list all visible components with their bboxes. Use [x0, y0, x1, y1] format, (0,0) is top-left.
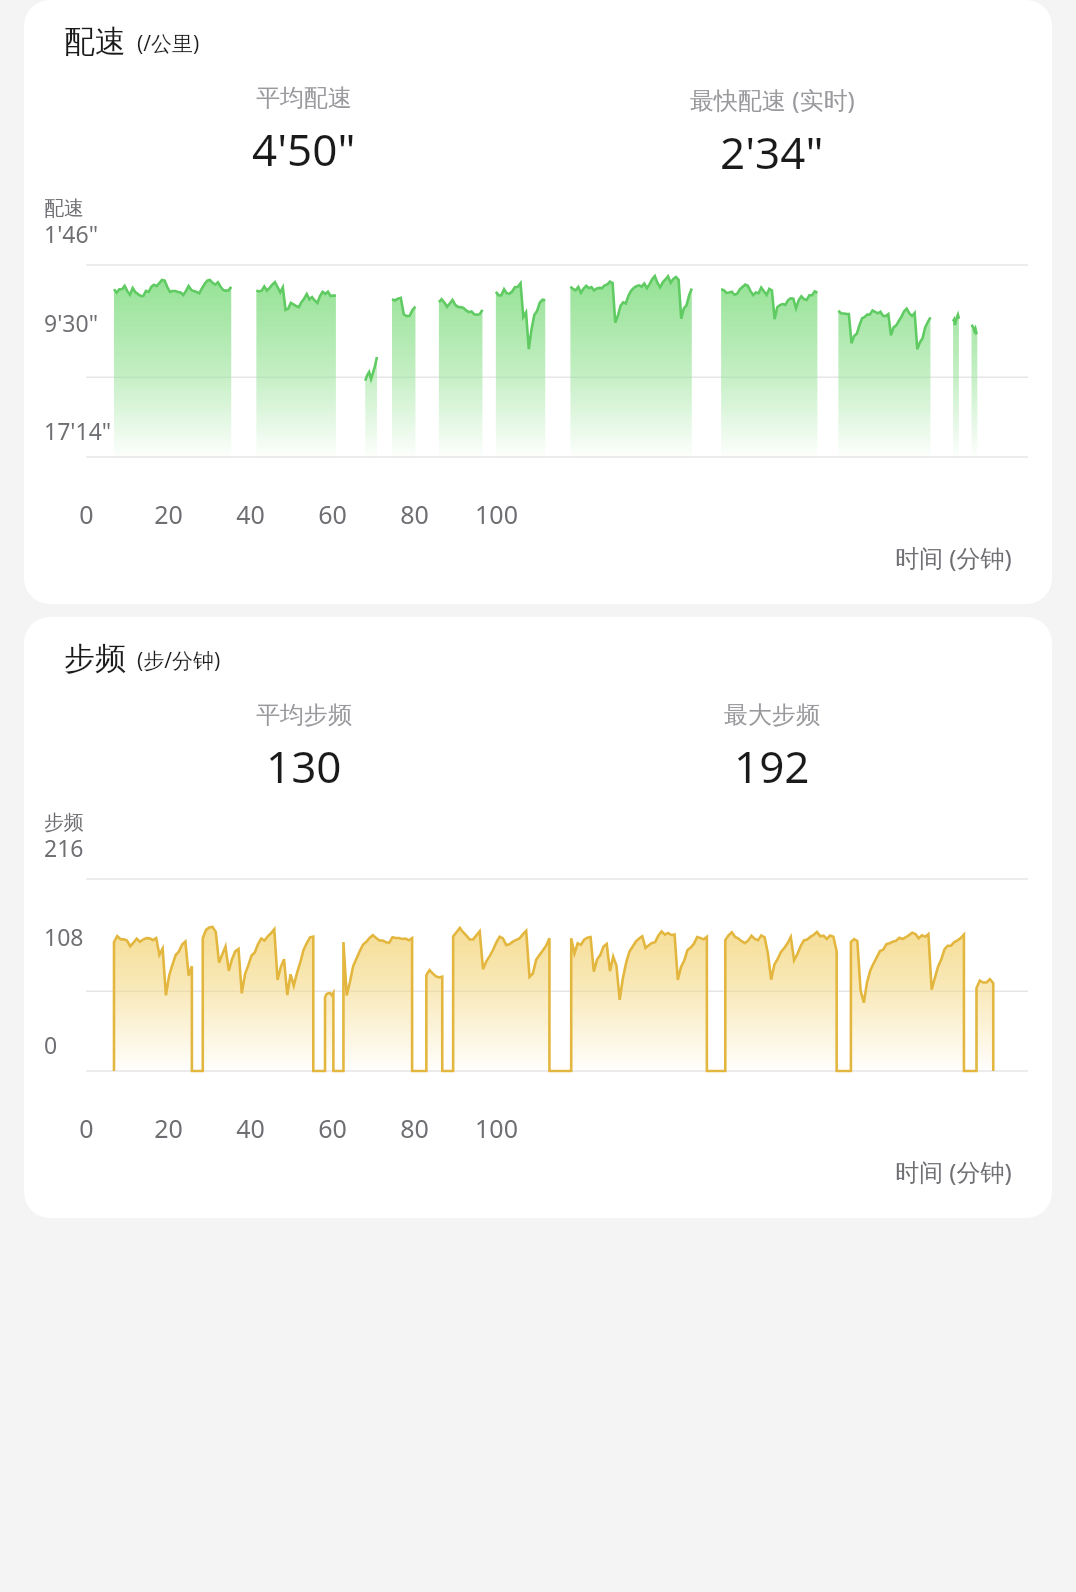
button[interactable]: 平均配速	[70, 83, 538, 179]
staticText: 平均配速	[256, 83, 352, 113]
staticText: 平均步频	[256, 700, 352, 730]
button[interactable]: 配速	[24, 0, 1052, 604]
staticText: 100	[467, 1111, 526, 1145]
button[interactable]: 步频	[24, 617, 1052, 1218]
staticText: 108	[44, 921, 84, 952]
staticText: 2'34"	[720, 122, 824, 182]
staticText: 17'14"	[44, 415, 112, 446]
staticText: 40	[221, 497, 280, 531]
staticText: 80	[385, 1111, 444, 1145]
staticText: 0	[57, 497, 116, 531]
staticText: 40	[221, 1111, 280, 1145]
staticText: 216	[44, 832, 84, 863]
staticText: 100	[467, 497, 526, 531]
staticText: 9'30"	[44, 307, 99, 338]
button[interactable]: 最快配速 (实时)	[538, 83, 1006, 182]
staticText: 时间 (分钟)	[895, 1155, 1012, 1188]
staticText: 步频	[44, 810, 84, 835]
staticText: 60	[303, 497, 362, 531]
staticText: 最快配速 (实时)	[690, 83, 855, 116]
staticText: 配速	[64, 22, 126, 61]
staticText: 192	[734, 736, 810, 796]
staticText: 130	[266, 736, 342, 796]
staticText: 60	[303, 1111, 362, 1145]
staticText: 配速	[44, 196, 84, 221]
button[interactable]: 最大步频	[538, 700, 1006, 796]
staticText: (/公里)	[137, 29, 200, 58]
staticText: 0	[57, 1111, 116, 1145]
staticText: 20	[139, 1111, 198, 1145]
staticText: (步/分钟)	[137, 646, 221, 675]
staticText: 80	[385, 497, 444, 531]
staticText: 最大步频	[724, 700, 820, 730]
staticText: 20	[139, 497, 198, 531]
staticText: 1'46"	[44, 218, 99, 249]
staticText: 步频	[64, 639, 126, 678]
staticText: 4'50"	[252, 119, 356, 179]
button[interactable]: 平均步频	[70, 700, 538, 796]
staticText: 时间 (分钟)	[895, 541, 1012, 574]
staticText: 0	[44, 1029, 58, 1060]
